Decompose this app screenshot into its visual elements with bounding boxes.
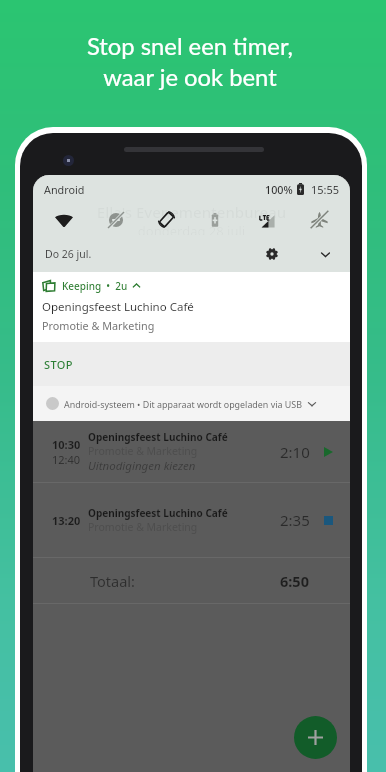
- staticText: 15:55: [311, 182, 340, 197]
- staticText: STOP: [44, 357, 73, 372]
- button[interactable]: 13:20: [33, 483, 350, 557]
- button[interactable]: Start timer: [317, 441, 339, 463]
- staticText: 6:50: [280, 571, 309, 591]
- button[interactable]: Uitvouwen: [314, 243, 336, 265]
- button[interactable]: Wifi: [49, 203, 79, 236]
- staticText: Ella's Evenementenbureau: [33, 202, 350, 222]
- staticText: Promotie & Marketing: [42, 318, 155, 333]
- staticText: 13:20: [52, 513, 81, 528]
- button[interactable]: 10:30: [33, 421, 350, 482]
- button[interactable]: Batterijbesparing: [200, 203, 230, 236]
- button[interactable]: Instellingen: [261, 243, 283, 265]
- button[interactable]: Stop timer: [317, 509, 339, 531]
- staticText: Android: [44, 182, 85, 197]
- button[interactable]: Mobiele data: [252, 203, 282, 236]
- staticText: Do 26 jul.: [45, 247, 92, 261]
- staticText: Stop snel een timer, waar je ook bent: [0, 32, 383, 91]
- button[interactable]: Nieuwe timer: [294, 716, 337, 759]
- staticText: Uitnodigingen kiezen: [88, 458, 196, 474]
- staticText: 2:10: [280, 442, 310, 462]
- button[interactable]: Niet storen: [101, 203, 131, 236]
- button[interactable]: Automatisch draaien: [151, 203, 181, 236]
- staticText: Openingsfeest Luchino Café: [88, 506, 228, 520]
- staticText: 2:35: [280, 510, 310, 530]
- button[interactable]: STOP: [33, 342, 350, 386]
- staticText: Android-systeem • Dit apparaat wordt opg…: [64, 398, 302, 410]
- staticText: 10:30: [52, 437, 81, 452]
- staticText: 100%: [265, 182, 293, 197]
- staticText: Keeping • 2u: [62, 279, 128, 293]
- button[interactable]: Keeping • 2u: [33, 272, 350, 342]
- button[interactable]: Vliegtuigmodus: [304, 203, 334, 236]
- staticText: Totaal:: [90, 571, 135, 591]
- staticText: donderdag 28 juli: [33, 222, 350, 235]
- button[interactable]: Android-systeem • Dit apparaat wordt opg…: [33, 386, 350, 421]
- staticText: 12:40: [52, 452, 81, 467]
- staticText: Openingsfeest Luchino Café: [88, 430, 228, 444]
- staticText: Promotie & Marketing: [88, 444, 198, 458]
- staticText: Openingsfeest Luchino Café: [42, 299, 194, 315]
- staticText: Promotie & Marketing: [88, 520, 198, 534]
